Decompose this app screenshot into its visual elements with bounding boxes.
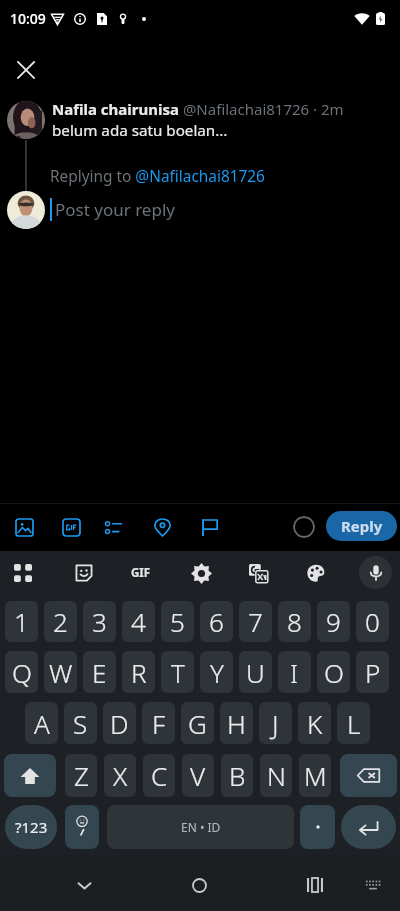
staticText: ?123 — [15, 817, 48, 837]
button[interactable]: 7 — [239, 601, 272, 642]
staticText: Replying to @Nafilachai81726 — [50, 166, 265, 187]
button[interactable]: 2 — [44, 601, 77, 642]
button[interactable]: Symbols — [7, 557, 39, 589]
button[interactable]: E — [83, 651, 116, 693]
staticText: O — [324, 655, 344, 690]
staticText: 3 — [92, 604, 107, 639]
staticText: Nafila chairunisa @Nafilachai81726 · 2m — [52, 99, 344, 119]
staticText: 10:09 — [10, 9, 46, 28]
button[interactable]: P — [356, 651, 389, 693]
staticText: L — [347, 706, 361, 741]
staticText: X — [113, 758, 128, 793]
staticText: 0 — [365, 604, 380, 639]
button[interactable]: A — [25, 702, 58, 744]
button[interactable]: U — [239, 651, 272, 693]
button[interactable]: F — [142, 702, 175, 744]
button[interactable]: Y — [200, 651, 233, 693]
button[interactable]: G — [181, 702, 214, 744]
button[interactable]: C — [143, 754, 175, 797]
button[interactable]: Period — [300, 805, 335, 849]
staticText: EN • ID — [181, 819, 221, 835]
staticText: P — [365, 655, 381, 690]
button[interactable]: 3 — [83, 601, 116, 642]
button[interactable]: Switch keyboard — [359, 870, 387, 898]
button[interactable]: EN • ID — [107, 805, 294, 849]
staticText: V — [190, 758, 206, 793]
button[interactable]: Shift — [4, 754, 56, 797]
staticText: 8 — [287, 604, 302, 639]
button[interactable]: Character count — [293, 516, 315, 538]
button[interactable]: Reply — [326, 511, 397, 541]
button[interactable]: Settings — [185, 557, 217, 589]
button[interactable]: Recent apps — [299, 869, 331, 901]
staticText: Q — [12, 655, 32, 690]
staticText: 4 — [131, 604, 146, 639]
staticText: D — [110, 706, 129, 741]
button[interactable]: K — [298, 702, 331, 744]
button[interactable]: Themes — [300, 557, 332, 589]
button[interactable]: 5 — [161, 601, 194, 642]
staticText: R — [131, 655, 147, 690]
staticText: K — [307, 706, 323, 741]
staticText: 1 — [14, 604, 29, 639]
button[interactable]: Add poll — [96, 510, 130, 544]
button[interactable]: 1 — [5, 601, 38, 642]
button[interactable]: Add photos or video — [7, 510, 41, 544]
staticText: N — [267, 758, 286, 793]
staticText: 5 — [170, 604, 185, 639]
button[interactable]: I — [278, 651, 311, 693]
button[interactable]: M — [299, 754, 331, 797]
button[interactable]: Enter — [341, 805, 396, 849]
staticText: Post your reply — [55, 198, 175, 221]
button[interactable]: S — [64, 702, 97, 744]
button[interactable]: N — [260, 754, 292, 797]
button[interactable]: O — [317, 651, 350, 693]
button[interactable]: Home — [183, 869, 215, 901]
staticText: H — [227, 706, 246, 741]
button[interactable]: Hide keyboard — [68, 869, 100, 901]
button[interactable]: T — [161, 651, 194, 693]
staticText: 7 — [248, 604, 263, 639]
button[interactable]: Stickers — [68, 557, 100, 589]
button[interactable]: B — [221, 754, 253, 797]
staticText: Y — [210, 655, 224, 690]
button[interactable]: ?123 — [5, 805, 57, 849]
button[interactable]: X — [104, 754, 136, 797]
staticText: B — [229, 758, 246, 793]
staticText: 2 — [53, 604, 68, 639]
button[interactable]: Backspace — [340, 754, 397, 797]
button[interactable]: D — [103, 702, 136, 744]
button[interactable]: Choose audience — [192, 510, 226, 544]
button[interactable]: 4 — [122, 601, 155, 642]
button[interactable]: R — [122, 651, 155, 693]
button[interactable]: H — [220, 702, 253, 744]
button[interactable]: W — [44, 651, 77, 693]
staticText: Reply — [341, 516, 383, 536]
staticText: F — [152, 706, 166, 741]
button[interactable]: 9 — [317, 601, 350, 642]
staticText: Z — [74, 758, 89, 793]
staticText: U — [246, 655, 265, 690]
button[interactable]: Voice input — [359, 556, 392, 589]
button[interactable]: V — [182, 754, 214, 797]
staticText: belum ada satu boelan... — [52, 120, 228, 141]
button[interactable]: Q — [5, 651, 38, 693]
button[interactable]: 8 — [278, 601, 311, 642]
button[interactable]: Tag location — [145, 510, 179, 544]
staticText: A — [34, 706, 50, 741]
staticText: C — [151, 758, 168, 793]
button[interactable]: Close — [8, 52, 44, 88]
button[interactable]: L — [337, 702, 370, 744]
button[interactable]: Z — [65, 754, 97, 797]
button[interactable]: Emoji — [65, 805, 99, 849]
button[interactable]: J — [259, 702, 292, 744]
button[interactable]: 6 — [200, 601, 233, 642]
button[interactable]: Add a GIF — [54, 510, 88, 544]
button[interactable]: GIF — [125, 557, 157, 589]
staticText: 6 — [209, 604, 224, 639]
button[interactable]: 0 — [356, 601, 389, 642]
staticText: M — [304, 758, 327, 793]
staticText: S — [73, 706, 88, 741]
staticText: I — [290, 655, 299, 690]
button[interactable]: Translate — [242, 557, 274, 589]
